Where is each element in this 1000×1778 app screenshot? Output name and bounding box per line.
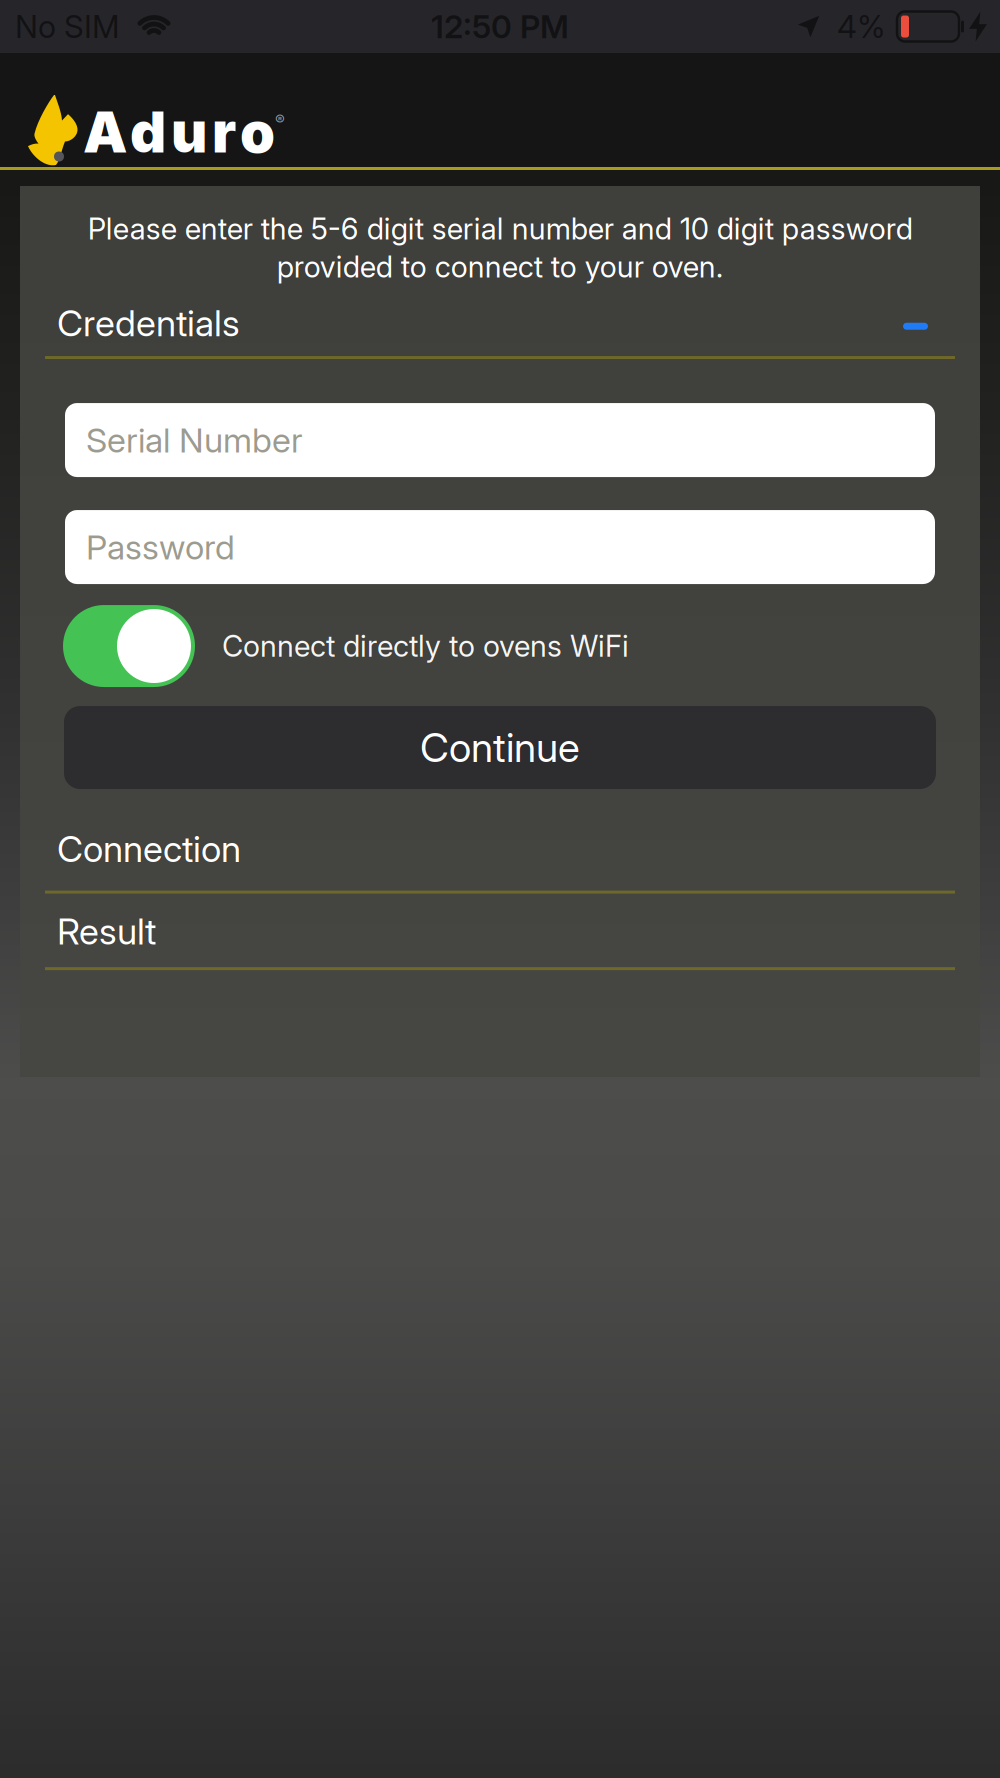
staticText: Result	[57, 910, 156, 953]
textField[interactable]: Password	[86, 526, 935, 568]
button[interactable]: Connection	[20, 789, 980, 871]
staticText: Serial Number	[86, 419, 303, 461]
textField[interactable]: Serial Number	[86, 419, 935, 461]
staticText: Connection	[57, 827, 241, 871]
staticText: Please enter the 5-6 digit serial number…	[87, 211, 912, 284]
button[interactable]: Credentials	[20, 284, 980, 345]
staticText: Aduro	[83, 98, 275, 166]
staticText: 12:50 PM	[431, 7, 569, 46]
button[interactable]: Continue	[20, 706, 980, 789]
staticText: 4%	[837, 7, 885, 45]
staticText: Continue	[420, 723, 580, 772]
staticText: No SIM	[15, 7, 120, 45]
staticText: Password	[86, 526, 235, 568]
staticText: Connect directly to ovens WiFi	[222, 628, 629, 664]
button[interactable]: Connect directly to ovens WiFi	[20, 584, 980, 687]
staticText: Credentials	[57, 301, 240, 345]
staticText: ®	[275, 111, 285, 129]
button[interactable]: Result	[20, 894, 980, 953]
